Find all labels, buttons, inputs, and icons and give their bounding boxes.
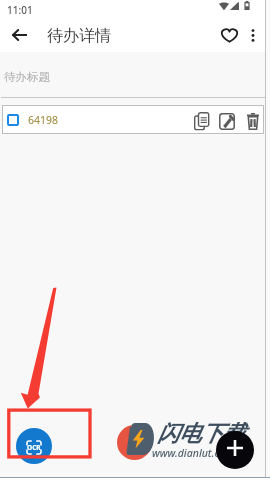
button[interactable]: Favorite (212, 19, 246, 52)
button[interactable]: 64198 (2, 105, 264, 134)
button[interactable]: Edit (214, 108, 238, 132)
button[interactable]: More options (238, 19, 267, 52)
button[interactable]: OCR scan (16, 428, 52, 464)
button[interactable]: Back (0, 19, 38, 52)
staticText: 闪电下载 (157, 420, 245, 448)
button[interactable]: Add (216, 431, 254, 469)
staticText: www.dianlut.com (152, 446, 235, 460)
staticText: 待办标题 (4, 70, 50, 84)
staticText: 待办详情 (47, 26, 111, 46)
staticText: 64198 (28, 113, 59, 127)
button[interactable]: Copy (188, 108, 212, 132)
staticText: OCR (27, 443, 41, 452)
button[interactable]: Delete (240, 108, 264, 132)
staticText: 11:01 (7, 3, 33, 17)
